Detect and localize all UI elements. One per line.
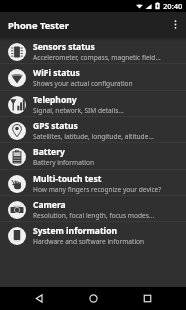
staticText: WiFi status	[33, 67, 80, 79]
staticText: 20:40	[163, 1, 183, 11]
button[interactable]: Telephony	[0, 92, 186, 118]
button[interactable]: Sensors status	[0, 39, 186, 65]
staticText: Battery information	[33, 158, 95, 167]
button[interactable]: System information	[0, 223, 186, 249]
staticText: Phone Tester	[8, 19, 69, 32]
button[interactable]: Multi-touch test	[0, 171, 186, 197]
staticText: Telephony	[33, 94, 77, 106]
staticText: Signal, network, SIM details...	[33, 106, 124, 115]
staticText: Hardware and software information	[33, 237, 145, 246]
staticText: Satellites, latitude, longitude, altitud…	[33, 132, 154, 141]
staticText: Camera	[33, 199, 66, 211]
staticText: Sensors status	[33, 41, 95, 53]
staticText: Battery	[33, 146, 65, 158]
button[interactable]: WiFi status	[0, 65, 186, 91]
staticText: How many fingers recognize your device?	[33, 185, 162, 194]
staticText: Accelerometer, compass, magnetic field..…	[33, 53, 161, 62]
staticText: Multi-touch test	[33, 173, 102, 185]
button[interactable]: Recents	[132, 287, 162, 310]
button[interactable]: GPS status	[0, 118, 186, 144]
button[interactable]: Battery	[0, 144, 186, 170]
staticText: System information	[33, 225, 117, 237]
staticText: Shows your actual configuration	[33, 79, 133, 88]
staticText: GPS status	[33, 120, 78, 132]
button[interactable]: More options	[164, 13, 186, 35]
button[interactable]: Camera	[0, 197, 186, 223]
staticText: Resolution, focal length, focus modes...	[33, 211, 155, 220]
button[interactable]: Home	[78, 287, 108, 310]
button[interactable]: Back	[24, 287, 54, 310]
